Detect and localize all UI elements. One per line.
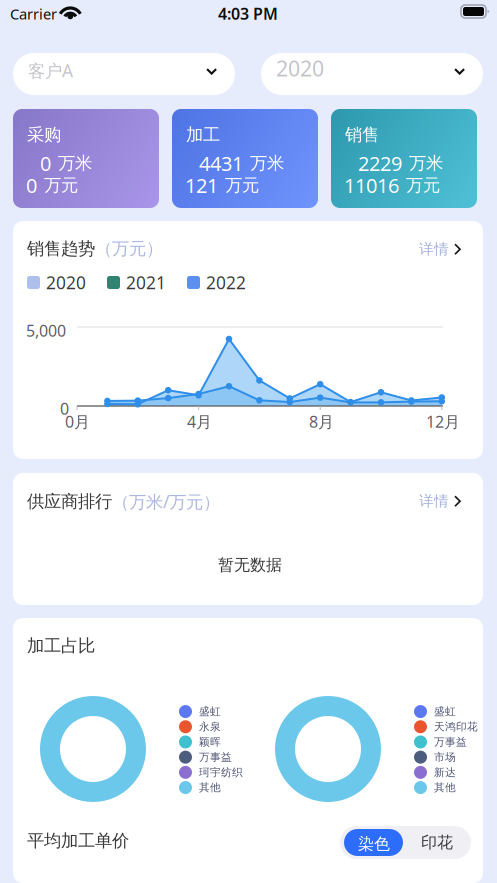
staticText: 121 xyxy=(185,172,218,199)
staticText: 0 xyxy=(40,150,51,177)
staticText: 4月 xyxy=(187,411,212,432)
staticText: 供应商排行 xyxy=(27,491,112,512)
staticText: 4:03 PM xyxy=(218,3,278,24)
staticText: 2020 xyxy=(276,54,324,82)
staticText: 0 xyxy=(26,172,37,199)
staticText: 2229 xyxy=(358,150,402,177)
staticText: （万元） xyxy=(95,238,163,259)
staticText: 加工占比 xyxy=(27,635,95,656)
staticText: 天鸿印花 xyxy=(434,720,478,733)
staticText: 市场 xyxy=(434,751,456,764)
staticText: Carrier xyxy=(10,4,57,23)
staticText: 万事益 xyxy=(434,735,467,748)
staticText: 2021 xyxy=(126,271,166,294)
staticText: 盛虹 xyxy=(434,705,456,718)
button[interactable]: 2020 xyxy=(261,53,483,95)
staticText: 颖晖 xyxy=(199,735,221,748)
button[interactable]: 染色 xyxy=(344,829,403,856)
staticText: 其他 xyxy=(199,781,221,794)
staticText: 万事益 xyxy=(199,751,232,764)
staticText: 0 xyxy=(60,398,69,419)
staticText: 详情 xyxy=(419,492,449,510)
staticText: 新达 xyxy=(434,766,456,779)
staticText: 万米 xyxy=(58,153,92,174)
staticText: 销售趋势 xyxy=(27,238,95,259)
staticText: 万元 xyxy=(44,175,78,196)
staticText: 详情 xyxy=(419,240,449,258)
staticText: 永泉 xyxy=(199,720,221,733)
staticText: 8月 xyxy=(309,411,334,432)
staticText: 其他 xyxy=(434,781,456,794)
staticText: 平均加工单价 xyxy=(27,830,129,851)
staticText: 2022 xyxy=(206,271,246,294)
staticText: 销售 xyxy=(345,124,379,145)
staticText: 万米 xyxy=(250,153,284,174)
button[interactable]: 客户A xyxy=(13,53,235,95)
staticText: 万元 xyxy=(225,175,259,196)
staticText: 万元 xyxy=(406,175,440,196)
staticText: 11016 xyxy=(344,172,399,199)
staticText: 12月 xyxy=(426,411,460,432)
staticText: 采购 xyxy=(27,124,61,145)
staticText: 4431 xyxy=(199,150,243,177)
staticText: （万米/万元） xyxy=(112,490,220,513)
staticText: 盛虹 xyxy=(199,705,221,718)
staticText: 客户A xyxy=(28,59,73,82)
staticText: 珂宇纺织 xyxy=(199,766,243,779)
staticText: 暂无数据 xyxy=(218,555,282,575)
staticText: 2020 xyxy=(46,271,86,294)
staticText: 万米 xyxy=(409,153,443,174)
staticText: 染色 xyxy=(358,834,390,854)
button[interactable]: 详情 xyxy=(419,240,461,258)
button[interactable]: 印花 xyxy=(407,829,467,856)
button[interactable]: 详情 xyxy=(419,492,461,510)
staticText: 加工 xyxy=(186,124,220,145)
staticText: 印花 xyxy=(421,833,453,852)
staticText: 0月 xyxy=(65,411,90,432)
staticText: 5,000 xyxy=(26,320,66,341)
